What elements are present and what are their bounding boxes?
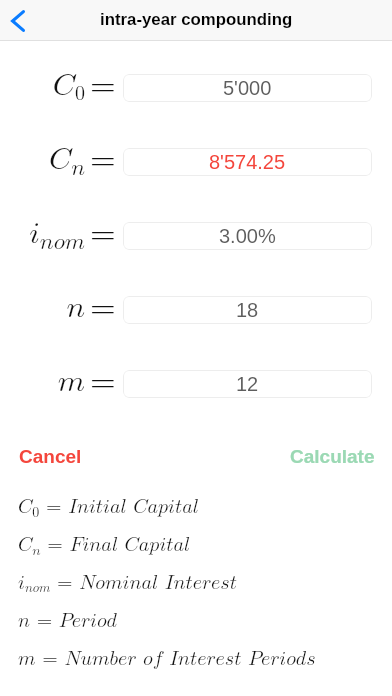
- staticText: 𝐶0 = 𝐼𝑛𝑖𝑡𝑖𝑎𝑙 𝐶𝑎𝑝𝑖𝑡𝑎𝑙: [18, 497, 199, 519]
- staticText: =: [90, 291, 116, 324]
- staticText: Cancel: [19, 446, 82, 467]
- staticText: =: [90, 143, 116, 176]
- button[interactable]: Cancel: [0, 441, 110, 471]
- button[interactable]: 5'000: [123, 74, 372, 102]
- staticText: 𝑛: [0, 292, 85, 323]
- staticText: 3.00%: [219, 225, 276, 247]
- staticText: 5'000: [223, 77, 272, 99]
- staticText: 𝐶𝑛 = 𝐹𝑖𝑛𝑎𝑙 𝐶𝑎𝑝𝑖𝑡𝑎𝑙: [18, 535, 191, 557]
- button[interactable]: 3.00%: [123, 222, 372, 250]
- button[interactable]: 12: [123, 370, 372, 398]
- button[interactable]: Calculate: [272, 441, 392, 471]
- staticText: 𝑚: [0, 366, 85, 397]
- staticText: =: [90, 217, 116, 250]
- staticText: 𝐶0: [0, 70, 85, 104]
- staticText: 𝐶𝑛: [0, 144, 85, 180]
- staticText: intra-year compounding: [100, 10, 293, 29]
- staticText: =: [90, 365, 116, 398]
- staticText: Calculate: [290, 446, 375, 467]
- staticText: 𝑖𝑛𝑜𝑚: [0, 218, 85, 254]
- staticText: 𝑚 = 𝑁𝑢𝑚𝑏𝑒𝑟 𝑜𝑓 𝐼𝑛𝑡𝑒𝑟𝑒𝑠𝑡 𝑃𝑒𝑟𝑖𝑜𝑑𝑠: [18, 649, 316, 669]
- staticText: =: [90, 69, 116, 102]
- staticText: 12: [236, 373, 259, 395]
- staticText: 𝑛 = 𝑃𝑒𝑟𝑖𝑜𝑑: [18, 611, 118, 631]
- staticText: 8'574.25: [209, 151, 286, 173]
- button[interactable]: Back: [0, 0, 42, 41]
- staticText: 18: [236, 299, 259, 321]
- button[interactable]: 18: [123, 296, 372, 324]
- button[interactable]: 8'574.25: [123, 148, 372, 176]
- staticText: 𝑖𝑛𝑜𝑚 = 𝑁𝑜𝑚𝑖𝑛𝑎𝑙 𝐼𝑛𝑡𝑒𝑟𝑒𝑠𝑡: [18, 573, 237, 595]
